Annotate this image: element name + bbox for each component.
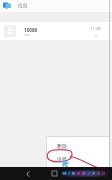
button[interactable]: 设置 xyxy=(47,152,109,165)
staticText: 11:28 xyxy=(90,26,101,32)
button[interactable]: 删除 xyxy=(47,139,109,152)
button[interactable]: 10086 xyxy=(0,22,112,40)
button[interactable]: Recents xyxy=(48,167,61,180)
button[interactable]: Messages xyxy=(1,0,13,12)
staticText: 设置 xyxy=(57,156,67,162)
button[interactable]: Back xyxy=(21,167,34,180)
staticText: 信息 xyxy=(18,3,28,9)
staticText: 删除 xyxy=(57,143,67,149)
staticText: 10086 xyxy=(24,27,38,33)
